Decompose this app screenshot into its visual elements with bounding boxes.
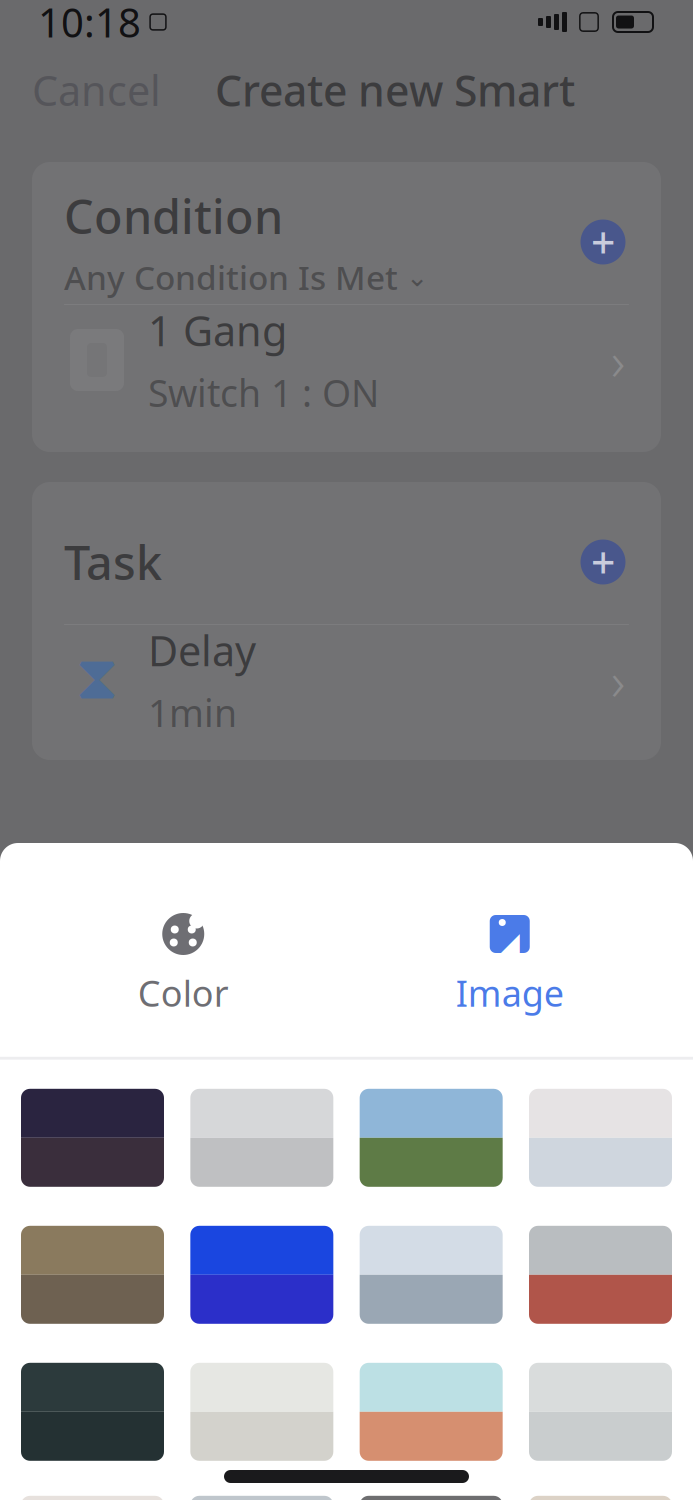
button[interactable]: Background image — [21, 1226, 164, 1324]
staticText: + — [591, 214, 615, 270]
staticText: Any Condition Is Met — [64, 255, 398, 299]
staticText: › — [611, 645, 625, 715]
button[interactable]: Background image — [360, 1226, 503, 1324]
button[interactable]: Background image — [21, 1496, 164, 1500]
staticText: Create new Smart — [215, 62, 575, 118]
button[interactable]: ⧗ — [64, 625, 629, 735]
button[interactable]: Background image — [360, 1089, 503, 1187]
staticText: 1 Gang — [148, 303, 287, 358]
button[interactable]: Cancel — [0, 49, 193, 131]
staticText: ⧗ — [75, 650, 118, 710]
staticText: Task — [64, 531, 162, 593]
staticText: Image — [456, 969, 564, 1017]
button[interactable]: Background image — [529, 1089, 672, 1187]
button[interactable]: Background image — [21, 1089, 164, 1187]
staticText: ◢ — [499, 927, 520, 957]
staticText: Color — [138, 969, 229, 1017]
button[interactable]: ◢ — [346, 899, 673, 1029]
button[interactable]: Background image — [529, 1226, 672, 1324]
button[interactable]: Background image — [190, 1363, 333, 1461]
button[interactable]: 1 Gang — [64, 305, 629, 415]
button[interactable]: Add Task — [577, 536, 629, 588]
button[interactable]: Add Condition — [577, 216, 629, 268]
button[interactable]: Background image — [529, 1363, 672, 1461]
button[interactable]: Color — [20, 899, 346, 1029]
staticText: Switch 1 : ON — [148, 368, 379, 417]
staticText: Cancel — [32, 63, 161, 117]
staticText: + — [591, 534, 615, 590]
button[interactable]: Background image — [190, 1226, 333, 1324]
button[interactable]: Background image — [21, 1363, 164, 1461]
button[interactable]: Background image — [529, 1496, 672, 1500]
button[interactable]: Background image — [190, 1496, 333, 1500]
staticText: › — [611, 325, 625, 395]
staticText: Delay — [148, 623, 256, 678]
staticText: 10:18 — [38, 0, 141, 48]
button[interactable]: Background image — [360, 1496, 503, 1500]
staticText: Condition — [64, 185, 283, 247]
staticText: ⌄ — [406, 262, 428, 292]
staticText: 1min — [148, 688, 237, 737]
button[interactable]: Background image — [360, 1363, 503, 1461]
button[interactable]: Background image — [190, 1089, 333, 1187]
